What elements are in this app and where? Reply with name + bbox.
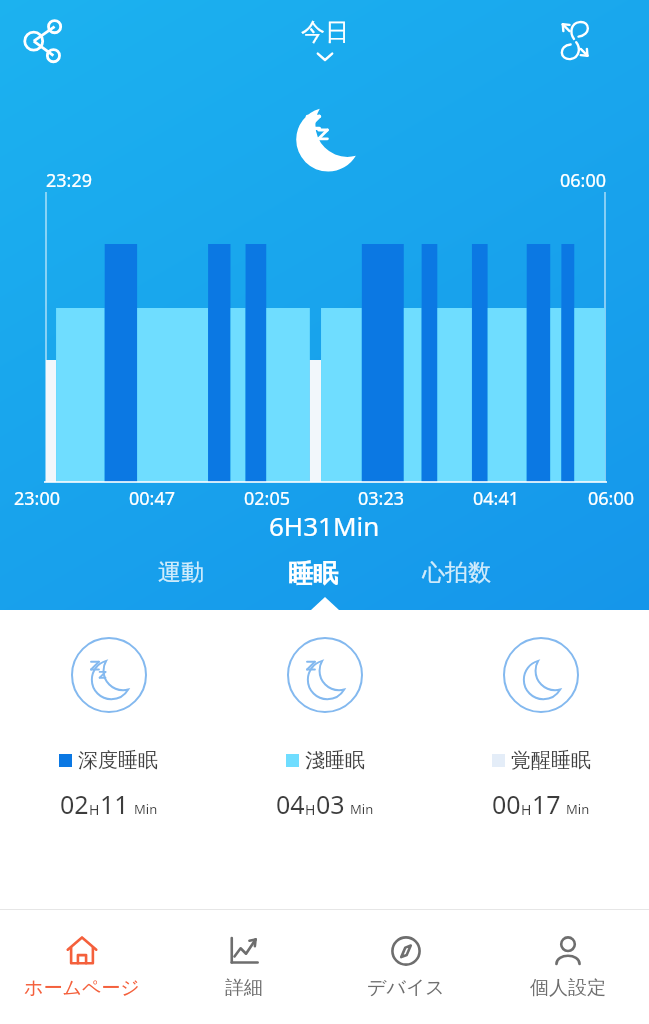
staticText: デバイス xyxy=(367,976,445,1000)
staticText: H xyxy=(89,800,100,819)
staticText: 00:47 xyxy=(129,486,176,506)
staticText: 淺睡眠 xyxy=(305,748,365,773)
staticText: 03:23 xyxy=(358,486,405,506)
staticText: 02:05 xyxy=(244,486,291,506)
button[interactable]: Share xyxy=(14,11,72,69)
staticText: H xyxy=(521,800,532,819)
staticText: 運動 xyxy=(158,558,204,587)
staticText: 睡眠 xyxy=(288,558,338,589)
staticText: 00 xyxy=(492,787,521,821)
staticText: 04 xyxy=(276,787,305,821)
staticText: 23:00 xyxy=(14,486,61,506)
staticText: 04:41 xyxy=(473,486,520,506)
staticText: 深度睡眠 xyxy=(78,748,158,773)
staticText: 個人設定 xyxy=(530,976,606,1000)
staticText: Min xyxy=(134,800,158,818)
button[interactable]: 今日 xyxy=(301,17,349,63)
staticText: 06:00 xyxy=(588,486,635,506)
button[interactable]: 心拍数 xyxy=(400,552,513,593)
staticText: 心拍数 xyxy=(422,558,491,587)
staticText: 詳細 xyxy=(225,976,263,1000)
button[interactable]: Disconnect device xyxy=(546,12,602,68)
staticText: 23:29 xyxy=(46,168,93,193)
staticText: 覚醒睡眠 xyxy=(511,748,591,773)
staticText: 今日 xyxy=(301,17,349,47)
staticText: ホームページ xyxy=(24,976,140,1000)
staticText: 06:00 xyxy=(560,168,607,193)
staticText: 17 xyxy=(532,787,561,821)
staticText: 03 xyxy=(316,787,345,821)
staticText: Min xyxy=(566,800,590,818)
button[interactable]: デバイス xyxy=(325,910,487,1024)
button[interactable]: ホームページ xyxy=(0,910,163,1024)
staticText: 11 xyxy=(100,787,129,821)
button[interactable]: 睡眠 xyxy=(266,552,360,595)
button[interactable]: 運動 xyxy=(136,552,226,593)
button[interactable]: 個人設定 xyxy=(487,910,649,1024)
staticText: 02 xyxy=(60,787,89,821)
staticText: Min xyxy=(350,800,374,818)
staticText: 6H31Min xyxy=(269,508,380,543)
staticText: H xyxy=(305,800,316,819)
button[interactable]: 詳細 xyxy=(163,910,325,1024)
